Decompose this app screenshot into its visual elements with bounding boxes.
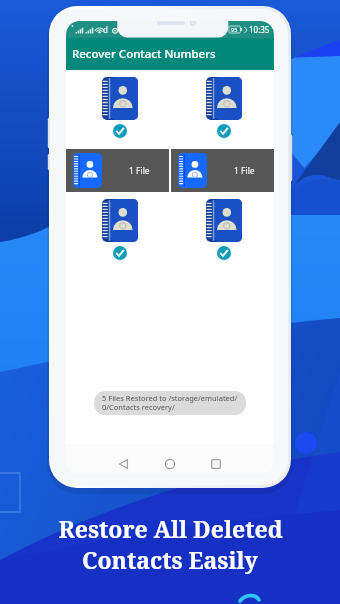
button[interactable]: 1 File xyxy=(66,149,169,192)
button[interactable] xyxy=(102,77,138,138)
staticText: o xyxy=(222,25,227,35)
staticText: d xyxy=(103,24,108,35)
staticText: Recover Contact Numbers xyxy=(72,46,216,62)
staticText: 95 xyxy=(231,26,238,33)
button[interactable]: Recover Contact Numbers xyxy=(66,38,274,70)
button[interactable]: Recent apps xyxy=(205,453,227,474)
staticText: Restore All Deleted xyxy=(58,513,283,544)
staticText: 10:35 xyxy=(249,24,270,35)
staticText: 5 Files Restored to /storage/emulated/ 0… xyxy=(102,393,238,413)
button[interactable]: Home xyxy=(159,453,181,474)
button[interactable] xyxy=(206,77,242,138)
staticText: Contacts Easily xyxy=(82,544,258,575)
button[interactable]: Back xyxy=(113,453,135,474)
button[interactable]: 1 File xyxy=(171,149,274,192)
staticText: 1 File xyxy=(129,165,150,177)
button[interactable] xyxy=(206,199,242,260)
staticText: 1 File xyxy=(234,165,255,177)
button[interactable] xyxy=(102,199,138,260)
